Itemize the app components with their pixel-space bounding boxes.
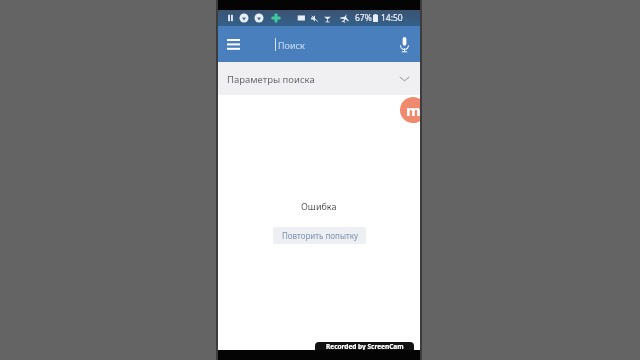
staticText: Recorded by ScreenCam xyxy=(326,342,404,350)
button[interactable]: Повторить попытку xyxy=(273,227,366,244)
staticText: Поиск xyxy=(278,39,305,51)
staticText: Повторить попытку xyxy=(282,230,358,241)
staticText: 14:50 xyxy=(381,12,403,24)
button[interactable]: Open navigation menu xyxy=(216,26,250,62)
staticText: Параметры поиска xyxy=(227,73,315,86)
staticText: m xyxy=(406,100,421,120)
button[interactable]: Параметры поиска xyxy=(216,62,422,95)
staticText: 67% xyxy=(355,12,372,24)
button[interactable]: Voice search xyxy=(387,26,422,62)
staticText: Ошибка xyxy=(301,200,337,212)
